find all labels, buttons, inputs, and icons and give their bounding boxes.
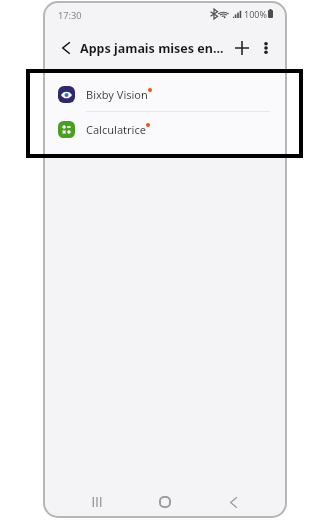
button[interactable]: Calculatrice [43,112,287,147]
button[interactable]: Add [230,36,254,60]
staticText: 17:30 [58,9,82,22]
button[interactable]: Bixby Vision [43,77,287,112]
staticText: 100% [244,8,267,20]
button[interactable]: Back [221,490,245,514]
button[interactable]: More options [255,37,277,59]
staticText: Bixby Vision [86,87,148,102]
staticText: Calculatrice [86,122,146,137]
button[interactable]: Recent apps [85,490,109,514]
button[interactable]: Home [153,490,177,514]
button[interactable]: Back [54,36,78,60]
staticText: Apps jamais mises en... [80,40,224,57]
